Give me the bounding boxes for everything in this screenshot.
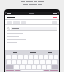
button[interactable]: Period — [44, 70, 49, 71]
button[interactable] — [24, 51, 41, 54]
button[interactable]: Search — [7, 26, 57, 30]
button[interactable] — [6, 51, 24, 54]
button[interactable]: Numbers — [6, 70, 14, 71]
button[interactable] — [41, 51, 58, 54]
button[interactable] — [7, 39, 57, 40]
button[interactable]: Return — [50, 70, 58, 71]
button[interactable] — [7, 36, 57, 37]
button[interactable] — [7, 16, 16, 19]
button[interactable] — [7, 33, 57, 34]
button[interactable]: Send — [52, 16, 57, 19]
button[interactable] — [7, 42, 57, 43]
button[interactable]: Emoji — [15, 70, 20, 71]
other: Search — [7, 27, 10, 30]
